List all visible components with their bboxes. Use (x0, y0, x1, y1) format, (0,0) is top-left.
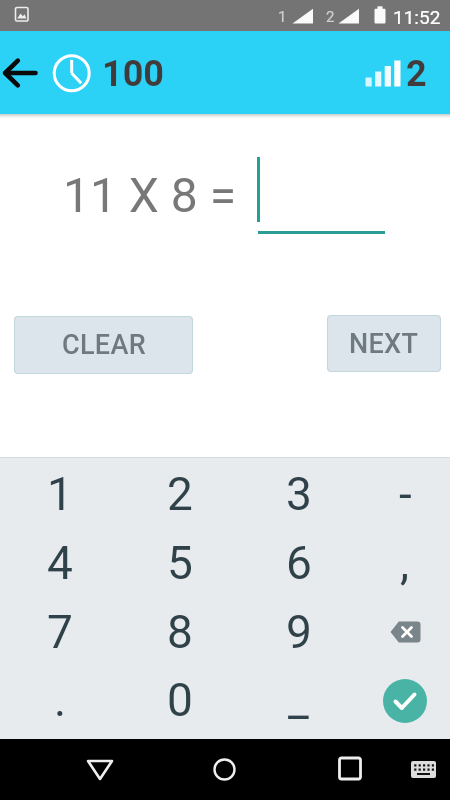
staticText: _ (288, 673, 309, 727)
button[interactable]: NEXT (327, 315, 441, 372)
button[interactable]: - (361, 459, 449, 529)
staticText: 5 (167, 536, 193, 590)
button[interactable]: _ (239, 665, 357, 735)
button[interactable]: 9 (240, 597, 358, 667)
button[interactable] (361, 597, 449, 667)
staticText: 9 (286, 605, 312, 659)
button[interactable] (68, 742, 132, 798)
button[interactable] (0, 52, 44, 96)
button[interactable]: 3 (240, 459, 358, 529)
button[interactable]: CLEAR (14, 316, 193, 374)
button[interactable]: 2 (121, 459, 239, 529)
staticText: 8 (167, 605, 193, 659)
button[interactable]: 1 (1, 459, 119, 529)
staticText: 11:52 (393, 6, 441, 28)
button[interactable]: 8 (121, 597, 239, 667)
button[interactable]: . (1, 665, 119, 735)
button[interactable]: 0 (121, 665, 239, 735)
staticText: 2 (167, 467, 193, 521)
button[interactable] (318, 742, 382, 798)
button[interactable] (192, 742, 256, 798)
button[interactable] (400, 742, 448, 798)
staticText: 4 (47, 536, 73, 590)
staticText: 7 (47, 605, 73, 659)
staticText: 2 (406, 53, 427, 95)
staticText: 1 (47, 467, 73, 521)
staticText: 6 (286, 536, 312, 590)
button[interactable] (361, 666, 449, 736)
staticText: 0 (167, 673, 193, 727)
staticText: 3 (286, 467, 312, 521)
staticText: 2 (326, 8, 335, 26)
button[interactable]: 4 (1, 528, 119, 598)
button[interactable]: 7 (1, 597, 119, 667)
staticText: 100 (102, 53, 164, 95)
button[interactable]: , (361, 528, 449, 598)
staticText: 11 X 8 = (63, 167, 237, 223)
staticText: CLEAR (62, 329, 146, 361)
staticText: NEXT (349, 328, 419, 360)
staticText: 1 (278, 8, 287, 26)
button[interactable]: 5 (121, 528, 239, 598)
staticText: , (400, 536, 410, 590)
staticText: - (399, 467, 412, 521)
button[interactable]: 6 (240, 528, 358, 598)
staticText: . (54, 673, 67, 727)
